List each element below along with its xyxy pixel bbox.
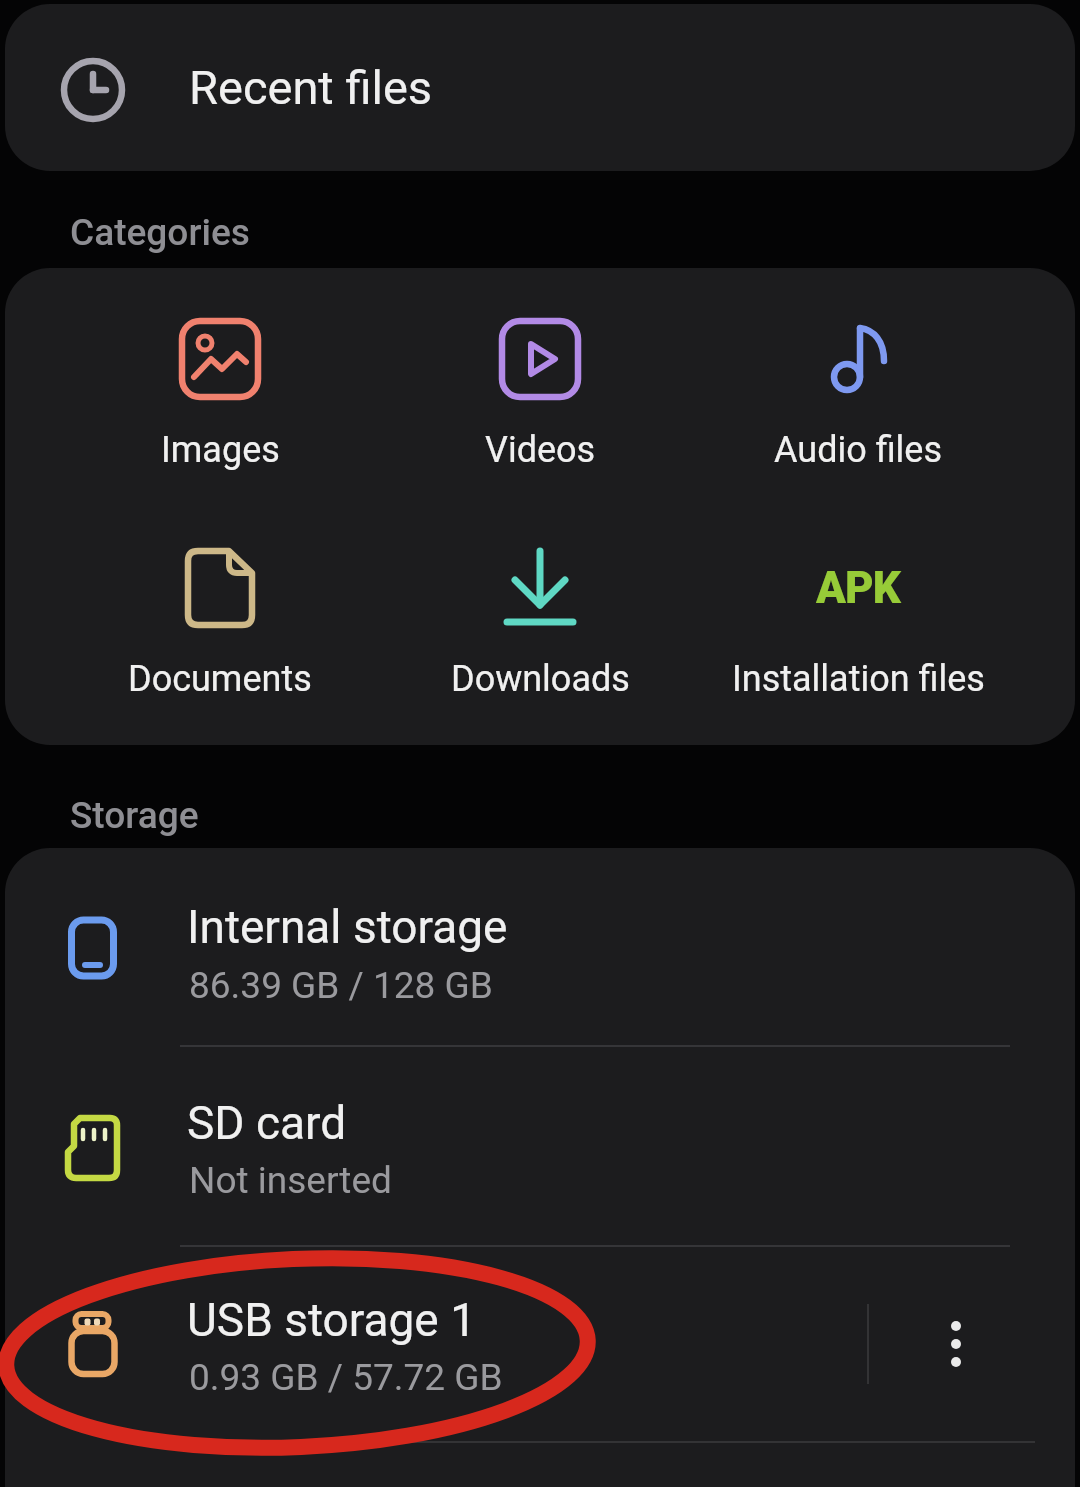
staticText: 86.39 GB / 128 GB (189, 964, 493, 1007)
staticText: Recent files (189, 60, 433, 115)
button[interactable]: Videos (383, 308, 697, 498)
staticText: APK (816, 562, 900, 614)
staticText: Internal storage (187, 900, 508, 954)
button[interactable]: APK (701, 537, 1015, 727)
staticText: Downloads (451, 658, 630, 700)
button[interactable]: Images (63, 308, 377, 498)
button[interactable]: USB storage 1 (5, 1246, 1075, 1442)
button[interactable]: Audio files (701, 308, 1015, 498)
button[interactable]: Downloads (383, 537, 697, 727)
staticText: Installation files (732, 658, 985, 700)
button[interactable] (901, 1266, 1011, 1422)
staticText: Audio files (774, 429, 943, 471)
staticText: 0.93 GB / 57.72 GB (189, 1356, 503, 1399)
staticText: Videos (485, 429, 596, 471)
staticText: USB storage 1 (187, 1293, 476, 1347)
button[interactable]: Documents (63, 537, 377, 727)
button[interactable]: SD card (5, 1046, 1075, 1246)
staticText: SD card (187, 1096, 347, 1150)
staticText: Categories (70, 211, 250, 254)
button[interactable]: Recent files (5, 4, 1075, 171)
staticText: Storage (70, 794, 199, 837)
staticText: Images (161, 429, 280, 471)
staticText: Documents (128, 658, 312, 700)
button[interactable]: Internal storage (5, 848, 1075, 1046)
staticText: Not inserted (189, 1159, 392, 1202)
